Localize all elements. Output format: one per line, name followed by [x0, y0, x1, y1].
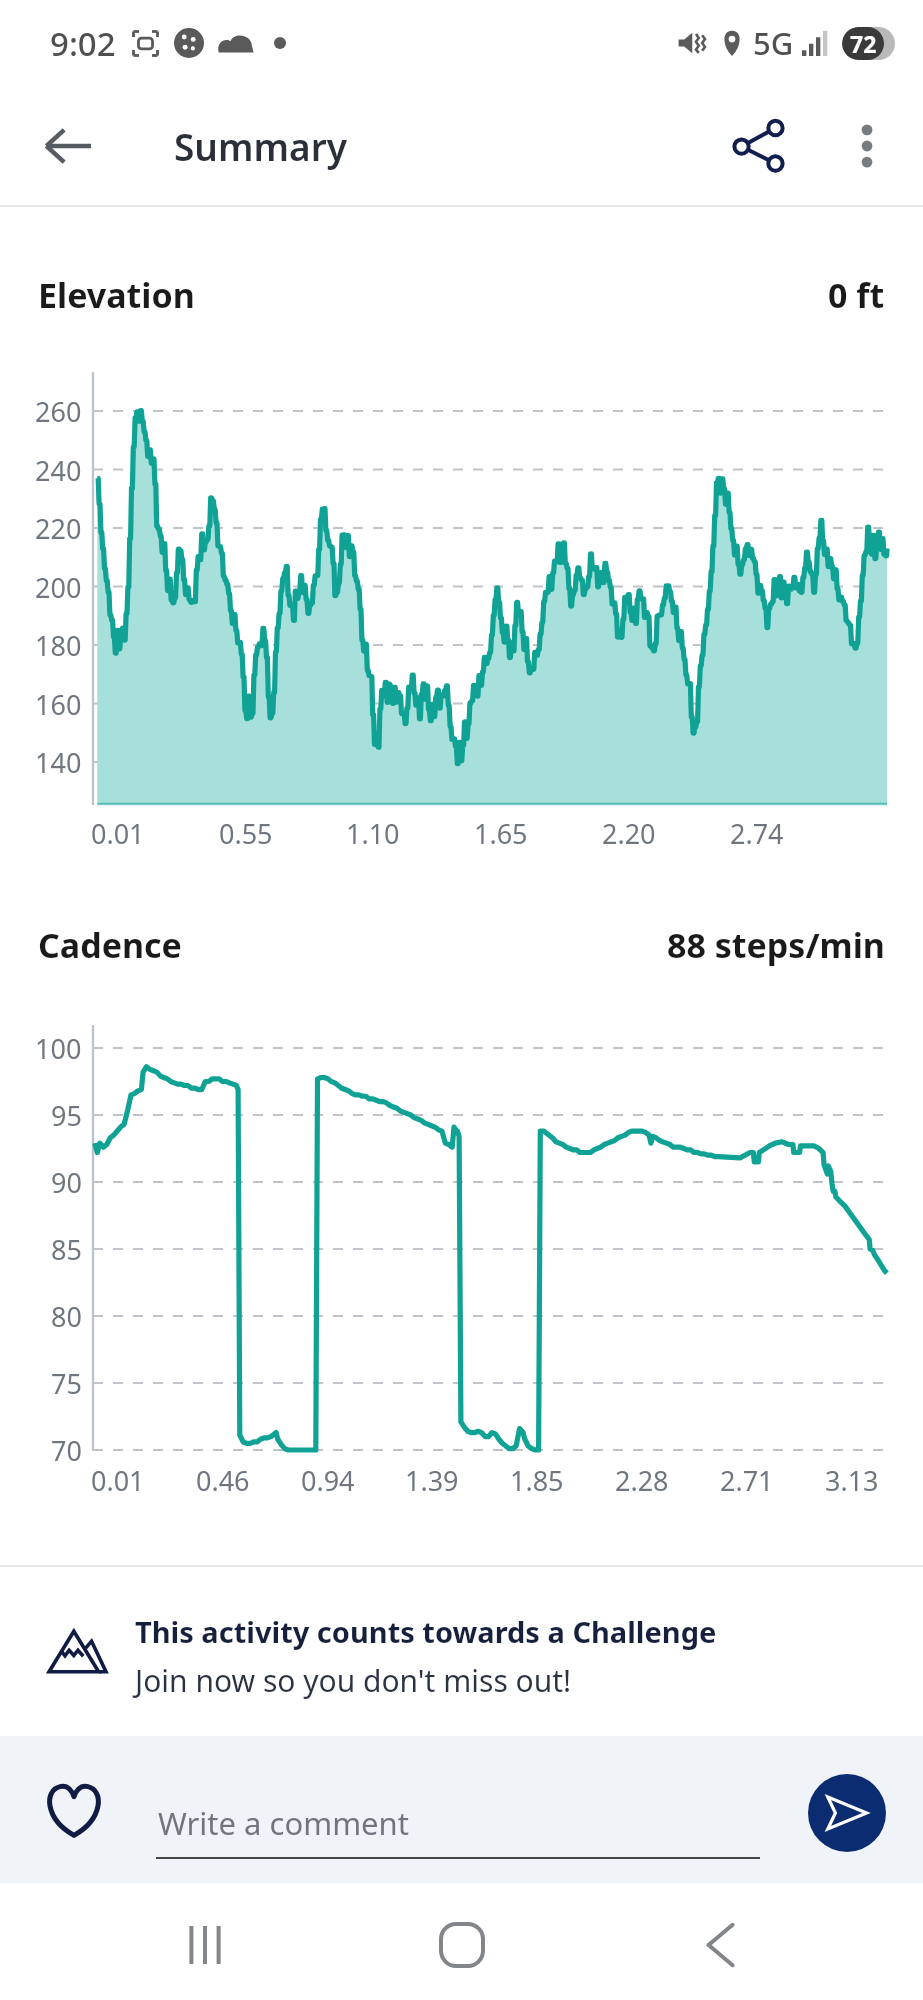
- staticText: 72: [850, 28, 877, 59]
- button[interactable]: Recent apps: [152, 1892, 257, 1997]
- staticText: 2.71: [720, 1462, 774, 1499]
- staticText: Cadence: [38, 922, 182, 968]
- staticText: 2.74: [730, 815, 784, 852]
- staticText: 220: [35, 510, 82, 547]
- staticText: Write a comment: [158, 1802, 409, 1844]
- staticText: 100: [35, 1030, 82, 1067]
- staticText: 0.55: [219, 815, 273, 852]
- button[interactable]: Send comment: [808, 1774, 886, 1852]
- staticText: Join now so you don't miss out!: [135, 1660, 572, 1701]
- staticText: 0.01: [91, 1462, 145, 1499]
- staticText: 85: [51, 1231, 82, 1268]
- button[interactable]: This activity counts towards a Challenge: [0, 1567, 923, 1736]
- staticText: 240: [35, 452, 82, 489]
- staticText: 9:02: [50, 21, 116, 66]
- staticText: 180: [35, 627, 82, 664]
- staticText: This activity counts towards a Challenge: [135, 1612, 717, 1651]
- staticText: 95: [51, 1097, 82, 1134]
- staticText: 1.10: [346, 815, 400, 852]
- staticText: 0.94: [301, 1462, 355, 1499]
- button[interactable]: Write a comment: [156, 1756, 760, 1864]
- button[interactable]: Home: [409, 1892, 514, 1997]
- button[interactable]: Back: [667, 1892, 772, 1997]
- staticText: 200: [35, 569, 82, 606]
- staticText: 140: [35, 744, 82, 781]
- staticText: 90: [51, 1164, 82, 1201]
- staticText: Summary: [174, 121, 347, 171]
- staticText: 1.85: [510, 1462, 564, 1499]
- staticText: 88 steps/min: [667, 922, 885, 968]
- staticText: 2.28: [615, 1462, 669, 1499]
- staticText: 1.65: [474, 815, 528, 852]
- staticText: 260: [35, 393, 82, 430]
- staticText: 0 ft: [828, 272, 885, 318]
- staticText: 0.01: [91, 815, 145, 852]
- staticText: 1.39: [405, 1462, 459, 1499]
- staticText: 70: [51, 1432, 82, 1469]
- button[interactable]: Back: [0, 86, 136, 205]
- staticText: Elevation: [38, 272, 195, 318]
- button[interactable]: Share: [704, 86, 812, 205]
- staticText: 5G: [753, 22, 794, 64]
- staticText: 80: [51, 1298, 82, 1335]
- staticText: 2.20: [602, 815, 656, 852]
- button[interactable]: Like: [20, 1756, 128, 1864]
- button[interactable]: More options: [812, 86, 922, 205]
- staticText: 75: [51, 1365, 82, 1402]
- staticText: 0.46: [196, 1462, 250, 1499]
- staticText: 3.13: [825, 1462, 879, 1499]
- staticText: 160: [35, 686, 82, 723]
